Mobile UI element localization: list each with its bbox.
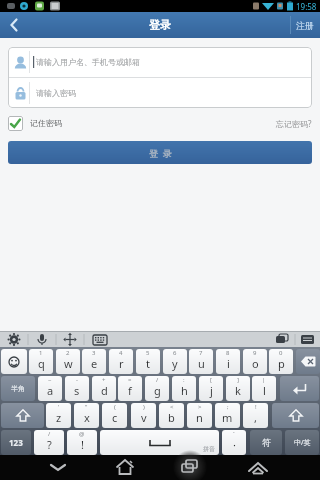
button[interactable]: e — [82, 349, 106, 374]
staticText: ( — [114, 403, 116, 411]
staticText: 6 — [173, 349, 177, 357]
button[interactable]: y — [163, 349, 187, 374]
staticText: 7 — [199, 349, 203, 357]
button[interactable] — [240, 455, 276, 480]
button[interactable]: 符 — [250, 430, 282, 455]
staticText: = — [128, 376, 132, 384]
staticText: d — [101, 383, 108, 398]
button[interactable]: z — [46, 403, 71, 428]
button[interactable]: f — [118, 376, 142, 401]
staticText: f — [128, 383, 132, 398]
button[interactable]: s — [65, 376, 89, 401]
button[interactable]: u — [189, 349, 213, 374]
button[interactable]: 请输入密码 — [8, 78, 312, 108]
button[interactable]: o — [243, 349, 267, 374]
button[interactable]: 中/英 — [285, 430, 319, 455]
staticText: y — [172, 356, 178, 371]
button[interactable]: t — [136, 349, 160, 374]
staticText: h — [181, 383, 188, 398]
staticText: 半角 — [11, 384, 25, 393]
button[interactable] — [296, 349, 320, 374]
button[interactable]: b — [159, 403, 184, 428]
staticText: 1 — [39, 349, 43, 357]
button[interactable] — [1, 403, 44, 428]
staticText: k — [235, 383, 241, 398]
staticText: 0 — [279, 349, 283, 357]
staticText: 3 — [92, 349, 96, 357]
staticText: 请输入用户名、手机号或邮箱 — [36, 57, 140, 67]
button[interactable] — [1, 349, 27, 374]
staticText: a — [47, 383, 54, 398]
button[interactable]: · — [222, 430, 246, 455]
button[interactable]: p — [269, 349, 293, 374]
staticText: - — [76, 376, 78, 384]
staticText: / — [156, 376, 159, 384]
button[interactable]: ? — [34, 430, 64, 455]
staticText: ? — [47, 437, 52, 452]
staticText: 8 — [226, 349, 230, 357]
staticText: ' — [58, 403, 60, 411]
staticText: 记住密码 — [30, 118, 62, 128]
staticText: c — [112, 410, 118, 425]
button[interactable] — [0, 12, 34, 38]
button[interactable]: 拼音 — [100, 430, 219, 455]
button[interactable] — [172, 455, 208, 480]
button[interactable] — [107, 455, 143, 480]
staticText: z — [56, 410, 62, 425]
button[interactable]: g — [145, 376, 169, 401]
staticText: " — [85, 403, 88, 411]
button[interactable]: a — [38, 376, 62, 401]
staticText: 请输入密码 — [36, 88, 76, 98]
staticText: p — [278, 356, 285, 371]
button[interactable]: 登 录 — [8, 141, 312, 164]
staticText: r — [119, 356, 124, 371]
button[interactable]: w — [56, 349, 80, 374]
staticText: ~ — [48, 376, 52, 384]
button[interactable]: l — [252, 376, 276, 401]
button[interactable]: 半角 — [1, 376, 35, 401]
staticText: | — [262, 376, 266, 384]
button[interactable]: h — [172, 376, 196, 401]
staticText: l — [263, 383, 266, 398]
button[interactable] — [280, 376, 319, 401]
staticText: [ — [210, 376, 212, 384]
button[interactable]: r — [109, 349, 133, 374]
button[interactable]: i — [216, 349, 240, 374]
button[interactable]: 请输入用户名、手机号或邮箱 — [8, 47, 312, 77]
staticText: e — [91, 356, 98, 371]
staticText: · — [233, 437, 236, 452]
staticText: ! — [81, 437, 84, 452]
button[interactable]: , — [243, 403, 268, 428]
staticText: 登录 — [149, 18, 171, 32]
button[interactable] — [272, 403, 319, 428]
button[interactable]: x — [74, 403, 99, 428]
button[interactable]: 注册 — [290, 12, 320, 38]
staticText: ; — [227, 403, 229, 411]
button[interactable]: d — [92, 376, 116, 401]
staticText: 注册 — [296, 20, 314, 31]
staticText: @ — [79, 430, 85, 438]
staticText: 中/英 — [294, 438, 311, 448]
staticText: m — [222, 410, 233, 425]
button[interactable]: k — [226, 376, 250, 401]
staticText: o — [252, 356, 259, 371]
staticText: + — [102, 376, 106, 384]
staticText: v — [141, 410, 147, 425]
button[interactable]: c — [102, 403, 127, 428]
staticText: x — [84, 410, 90, 425]
button[interactable]: 忘记密码? — [276, 118, 312, 129]
button[interactable]: ! — [67, 430, 97, 455]
staticText: , — [254, 410, 257, 425]
button[interactable]: m — [215, 403, 240, 428]
staticText: 123 — [9, 437, 23, 448]
button[interactable] — [40, 455, 76, 480]
staticText: 登 录 — [149, 147, 172, 159]
button[interactable]: v — [131, 403, 156, 428]
button[interactable]: 123 — [1, 430, 31, 455]
staticText: ] — [237, 376, 239, 384]
button[interactable]: n — [187, 403, 212, 428]
button[interactable]: q — [29, 349, 53, 374]
button[interactable] — [8, 116, 23, 131]
staticText: ) — [143, 403, 145, 411]
button[interactable]: j — [199, 376, 223, 401]
